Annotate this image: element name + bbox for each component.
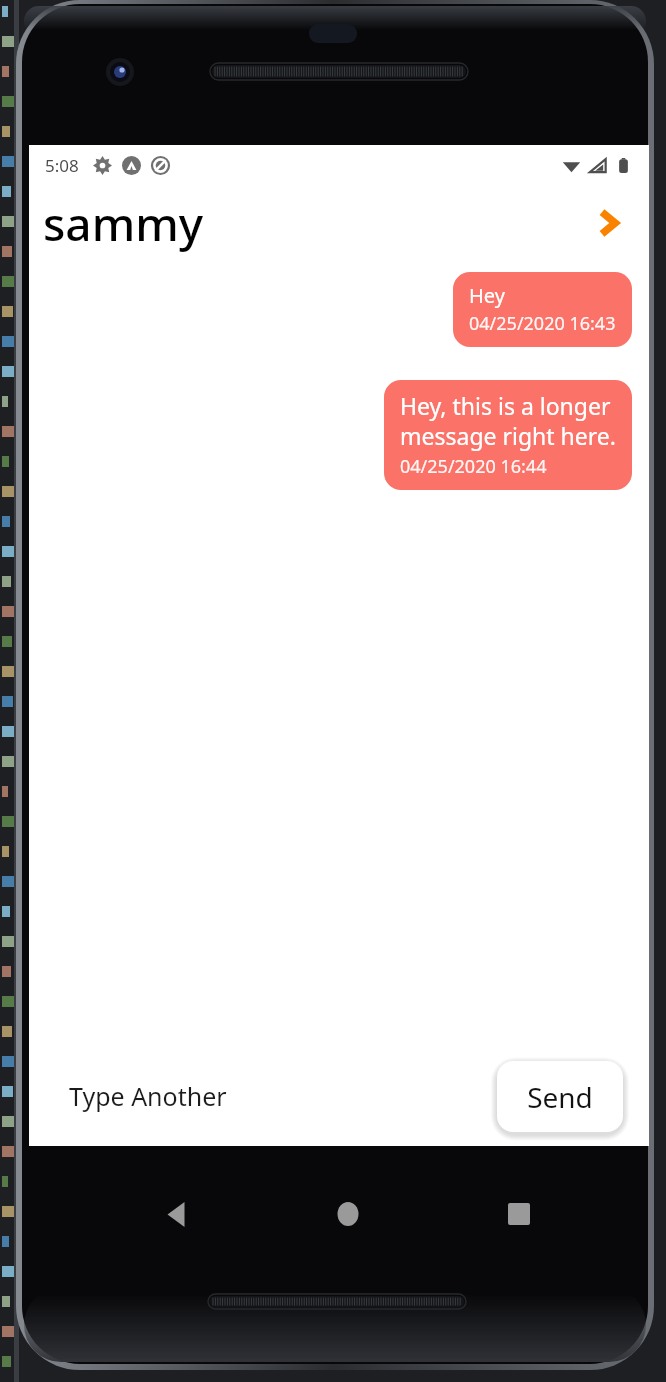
button[interactable]: Type Another <box>69 1079 227 1113</box>
button[interactable]: Send <box>497 1061 623 1132</box>
staticText: Type Another <box>69 1079 227 1113</box>
staticText: Hey, this is a longer message right here… <box>400 390 616 452</box>
staticText: Hey <box>469 282 505 309</box>
staticText: sammy <box>43 192 204 255</box>
button[interactable]: Hey <box>453 272 632 347</box>
button[interactable]: Home <box>324 1190 372 1238</box>
button[interactable]: Recent apps <box>495 1190 543 1238</box>
staticText: 5:08 <box>45 154 79 177</box>
staticText: 04/25/2020 16:43 <box>469 311 616 336</box>
staticText: 04/25/2020 16:44 <box>400 454 547 479</box>
button[interactable]: Forward <box>585 200 631 246</box>
button[interactable]: Hey, this is a longer message right here… <box>384 380 632 490</box>
button[interactable]: Back <box>153 1190 201 1238</box>
staticText: Send <box>527 1078 593 1116</box>
